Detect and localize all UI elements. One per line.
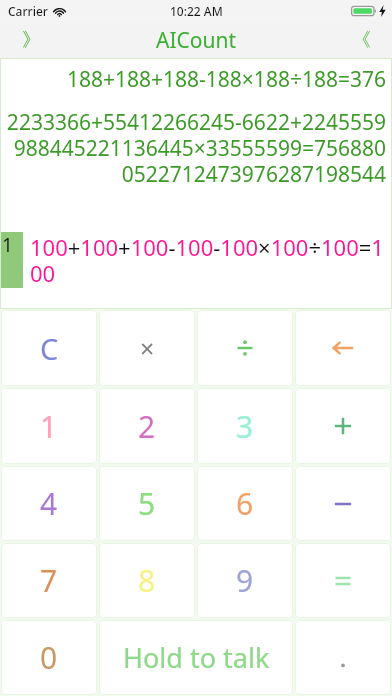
button[interactable]: 5 — [99, 466, 195, 541]
button[interactable]: Minus — [295, 466, 391, 541]
button[interactable]: × — [99, 310, 195, 386]
staticText: × — [140, 331, 155, 365]
staticText: 3 — [236, 406, 254, 447]
staticText: 4 — [40, 483, 58, 524]
button[interactable]: 4 — [1, 466, 97, 541]
button[interactable]: 1 — [1, 388, 97, 464]
button[interactable]: Equals — [295, 543, 391, 618]
button[interactable]: Backspace — [295, 310, 391, 386]
staticText: 1 — [2, 232, 13, 258]
button[interactable]: 0 — [1, 620, 97, 695]
button[interactable]: 7 — [1, 543, 97, 618]
staticText: 188+188+188-188×188÷188=376 — [6, 65, 386, 94]
staticText: 8 — [138, 560, 156, 601]
button[interactable]: Decimal point — [295, 620, 391, 695]
button[interactable]: Next — [0, 22, 62, 58]
staticText: 2 — [138, 406, 156, 447]
staticText: 2233366+55412266245-6622+224555998844522… — [6, 108, 386, 189]
staticText: 》 — [22, 28, 41, 52]
staticText: 100+100+100-100-100×100÷100=100 — [30, 232, 390, 288]
staticText: Hold to talk — [123, 639, 270, 676]
staticText: 《 — [352, 28, 371, 52]
staticText: C — [40, 329, 59, 368]
staticText: 1 — [40, 406, 58, 447]
button[interactable]: 8 — [99, 543, 195, 618]
button[interactable]: 3 — [197, 388, 293, 464]
staticText: 10:22 AM — [170, 3, 223, 19]
staticText: 5 — [138, 483, 156, 524]
button[interactable]: 6 — [197, 466, 293, 541]
button[interactable]: C — [1, 310, 97, 386]
button[interactable]: 9 — [197, 543, 293, 618]
staticText: AICount — [156, 26, 237, 55]
button[interactable]: 1 — [0, 232, 392, 288]
button[interactable]: Hold to talk — [99, 620, 293, 695]
staticText: Carrier — [8, 3, 48, 19]
button[interactable]: 2 — [99, 388, 195, 464]
button[interactable]: Divide — [197, 310, 293, 386]
staticText: 0 — [40, 637, 58, 678]
button[interactable]: Previous — [330, 22, 392, 58]
staticText: 6 — [236, 483, 254, 524]
staticText: 9 — [236, 560, 254, 601]
button[interactable]: Plus — [295, 388, 391, 464]
staticText: 7 — [40, 560, 58, 601]
